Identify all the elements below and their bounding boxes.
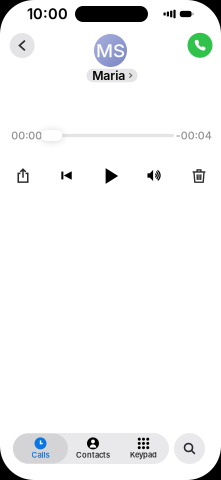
button[interactable]: Keypad [118, 433, 169, 463]
staticText: Contacts [76, 450, 110, 460]
button[interactable]: Call [187, 33, 212, 58]
staticText: -00:04 [176, 129, 212, 142]
button[interactable]: Share [9, 162, 37, 188]
staticText: Maria [92, 68, 125, 83]
staticText: MS [96, 39, 125, 62]
button[interactable]: Rewind [53, 162, 81, 188]
button[interactable]: Maria [86, 69, 137, 82]
staticText: Keypad [130, 450, 157, 459]
button[interactable]: Play [98, 163, 126, 189]
staticText: Calls [31, 450, 49, 460]
button[interactable]: Contacts [68, 433, 118, 463]
button[interactable]: Calls [13, 433, 68, 463]
staticText: 00:00 [11, 129, 42, 142]
button[interactable]: Back [10, 33, 35, 58]
button[interactable]: Search [174, 433, 205, 464]
staticText: 10:00 [27, 5, 68, 23]
button[interactable]: Delete [185, 163, 213, 189]
button[interactable]: Speaker [141, 162, 169, 188]
